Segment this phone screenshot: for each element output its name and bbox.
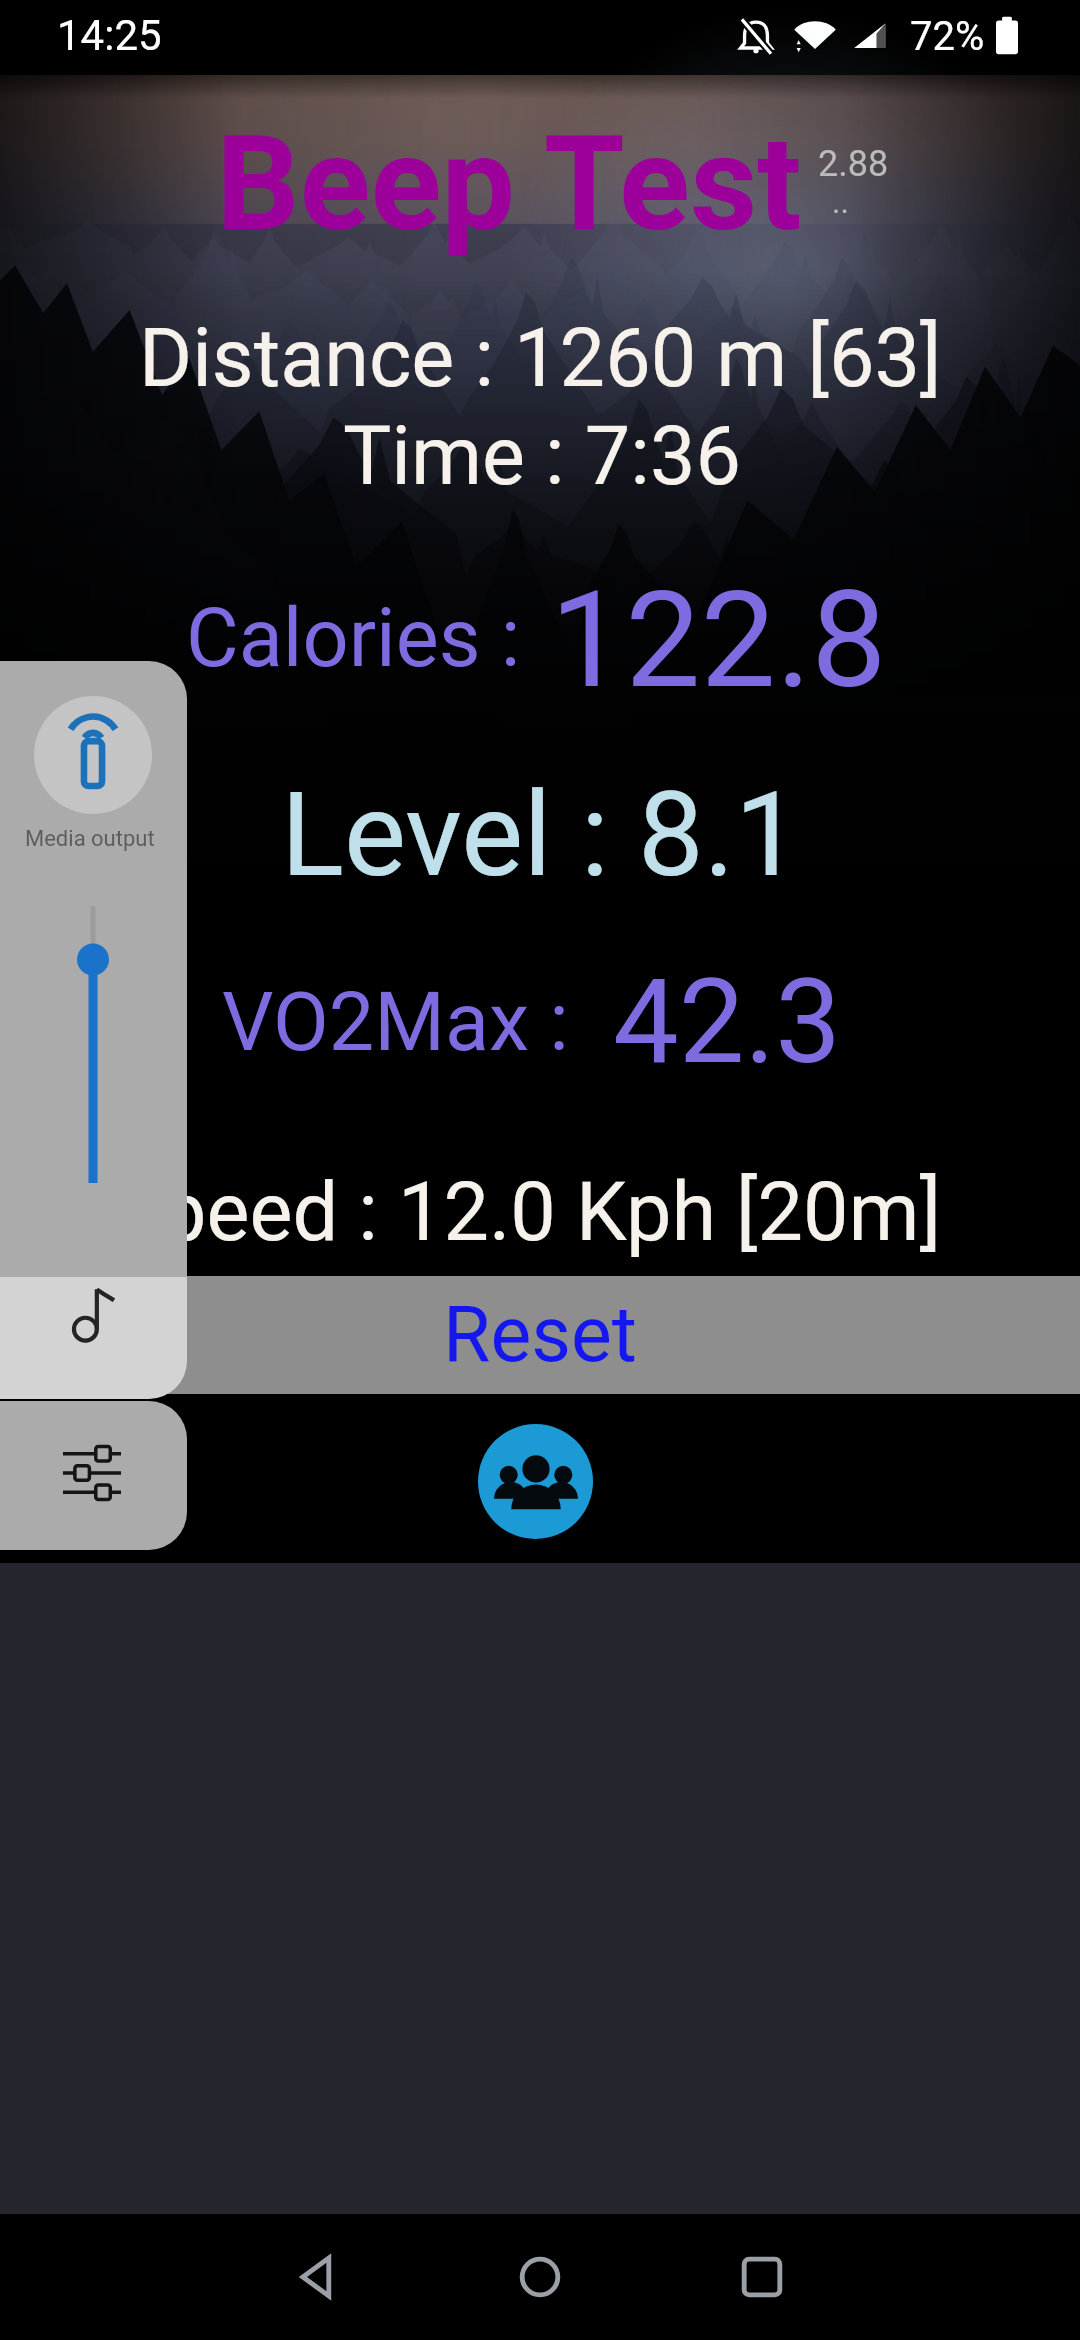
- button[interactable]: Sound settings: [0, 1401, 187, 1550]
- staticText: Media output: [25, 826, 155, 852]
- staticText: Level : 8.1: [281, 766, 801, 903]
- staticText: 14:25: [57, 11, 162, 60]
- staticText: 42.3: [613, 953, 842, 1090]
- staticText: 122.8: [550, 562, 887, 719]
- staticText: Speed : 12.0 Kph [20m]: [113, 1165, 942, 1260]
- staticText: Beep Test: [216, 107, 802, 261]
- button[interactable]: Back: [258, 2217, 378, 2337]
- button[interactable]: Media output: [34, 696, 152, 814]
- staticText: ..: [832, 183, 849, 221]
- staticText: Reset: [443, 1290, 638, 1380]
- staticText: 2.88: [818, 143, 889, 185]
- staticText: Calories :: [186, 591, 521, 686]
- staticText: Distance : 1260 m [63]: [139, 311, 942, 406]
- staticText: VO2Max :: [222, 975, 569, 1070]
- button[interactable]: Recents: [702, 2217, 822, 2337]
- staticText: 72%: [910, 13, 985, 60]
- button[interactable]: Community: [478, 1424, 593, 1539]
- button[interactable]: Ringer mode: [0, 1277, 187, 1399]
- button[interactable]: Home: [480, 2217, 600, 2337]
- staticText: Time : 7:36: [343, 409, 741, 504]
- button[interactable]: Reset: [0, 1276, 1080, 1394]
